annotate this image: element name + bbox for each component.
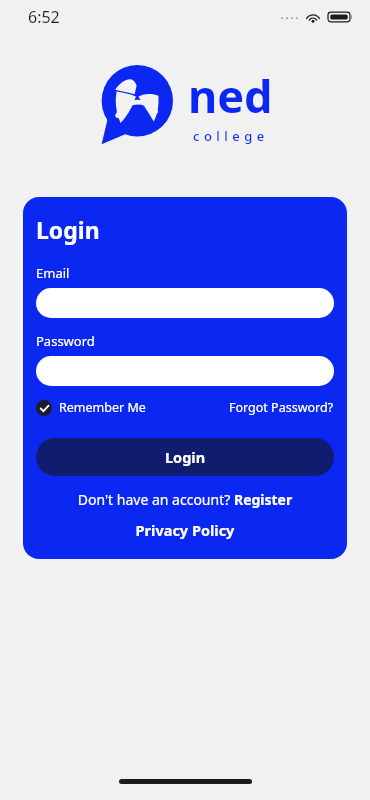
staticText: Password <box>36 332 95 350</box>
staticText: Login <box>165 447 206 467</box>
staticText: Email <box>36 264 70 282</box>
button[interactable]: Privacy Policy <box>36 520 334 540</box>
staticText: ned <box>188 65 273 126</box>
staticText: 6:52 <box>28 6 60 28</box>
button[interactable]: Password input <box>36 356 334 386</box>
button[interactable]: Login <box>36 438 334 476</box>
button[interactable]: Don't have an account? Register <box>36 490 334 509</box>
button[interactable]: Remember Me <box>36 396 146 419</box>
button[interactable]: Email input <box>36 288 334 318</box>
staticText: Login <box>36 214 100 245</box>
staticText: college <box>193 127 269 145</box>
staticText: Remember Me <box>59 399 146 416</box>
button[interactable]: Forgot Password? <box>229 396 334 419</box>
